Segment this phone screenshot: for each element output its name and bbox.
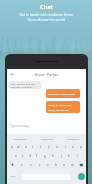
staticText: suggestion	[41, 137, 54, 140]
staticText: y	[48, 145, 50, 149]
staticText: q	[11, 145, 13, 149]
button[interactable]: suggestion	[60, 134, 86, 142]
button[interactable]: i	[61, 142, 69, 151]
button[interactable]: w	[15, 142, 22, 151]
staticText: a	[15, 154, 17, 158]
staticText: x	[30, 163, 32, 167]
button[interactable]: Send	[78, 173, 85, 180]
staticText: Type a message	[10, 124, 30, 128]
staticText: u	[56, 145, 58, 149]
staticText: r	[32, 145, 34, 149]
button[interactable]: m	[68, 160, 76, 169]
staticText: l	[77, 154, 78, 158]
staticText: suggestion	[67, 137, 80, 140]
button[interactable]: ?123	[8, 171, 16, 182]
button[interactable]: b	[52, 160, 60, 169]
button[interactable]: a	[12, 151, 19, 160]
staticText: .	[74, 175, 75, 179]
staticText: ?123	[10, 175, 15, 178]
button[interactable]: r	[29, 142, 37, 151]
staticText: n	[63, 163, 65, 167]
staticText: Get in touch with audience faster from a…	[19, 12, 74, 22]
staticText: b	[55, 163, 57, 167]
staticText: Chat	[40, 3, 53, 10]
button[interactable]: n	[60, 160, 68, 169]
button[interactable]: Type a message	[7, 120, 86, 134]
staticText: w	[17, 145, 20, 149]
staticText: m	[71, 163, 74, 167]
staticText: c	[39, 163, 41, 167]
staticText: Going to send a few more, are you in?	[48, 103, 72, 111]
staticText: v	[47, 163, 49, 167]
button[interactable]: h	[49, 151, 57, 160]
staticText: f	[36, 154, 38, 158]
button[interactable]: d	[26, 151, 33, 160]
staticText: d	[29, 154, 31, 158]
staticText: I did see it. What a day!	[48, 92, 76, 95]
button[interactable]: l	[73, 151, 81, 160]
staticText: i	[65, 145, 66, 149]
staticText: z	[21, 163, 23, 167]
button[interactable]: Back	[8, 70, 16, 78]
button[interactable]: Backspace	[76, 160, 85, 169]
staticText: j	[61, 154, 62, 158]
button[interactable]: v	[44, 160, 52, 169]
button[interactable]: ,	[16, 171, 21, 182]
staticText: e	[25, 145, 27, 149]
button[interactable]: k	[65, 151, 73, 160]
staticText: Hey, did you see the big log? Amazing!	[11, 82, 35, 88]
staticText: ,	[18, 175, 19, 179]
staticText: o	[72, 145, 74, 149]
button[interactable]: g	[41, 151, 49, 160]
button[interactable]: suggestion	[7, 134, 34, 142]
button[interactable]: p	[77, 142, 85, 151]
staticText: s	[22, 154, 24, 158]
button[interactable]: suggestion	[34, 134, 60, 142]
button[interactable]: f	[33, 151, 41, 160]
button[interactable]: o	[69, 142, 77, 151]
button[interactable]: q	[8, 142, 15, 151]
button[interactable]: x	[26, 160, 35, 169]
button[interactable]: t	[37, 142, 45, 151]
button[interactable]: c	[35, 160, 44, 169]
staticText: h	[52, 154, 54, 158]
staticText: suggestion	[14, 137, 27, 140]
button[interactable]: s	[19, 151, 26, 160]
button[interactable]: e	[22, 142, 29, 151]
staticText: k	[68, 154, 70, 158]
button[interactable]: z	[17, 160, 26, 169]
staticText: Bryan Parker	[35, 72, 59, 77]
staticText: p	[80, 145, 82, 149]
staticText: g	[44, 154, 46, 158]
button[interactable]: Shift	[8, 160, 17, 169]
button[interactable]: u	[53, 142, 61, 151]
staticText: t	[40, 145, 42, 149]
button[interactable]: y	[45, 142, 53, 151]
button[interactable]: j	[57, 151, 65, 160]
